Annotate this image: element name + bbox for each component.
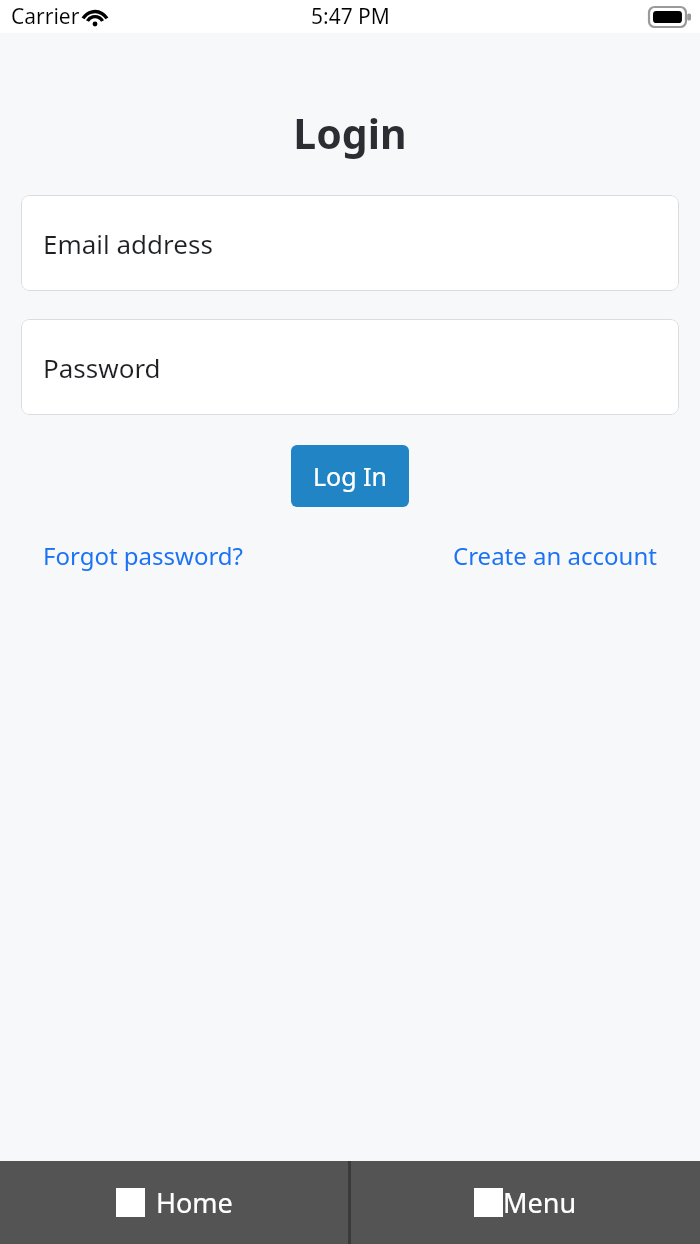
staticText: 5:47 PM	[311, 2, 390, 31]
staticText: Carrier	[11, 2, 80, 31]
staticText: Home	[156, 1184, 233, 1221]
button[interactable]: Email address	[21, 195, 679, 291]
staticText: Password	[43, 350, 161, 385]
staticText: Menu	[503, 1184, 577, 1221]
button[interactable]: Create an account	[453, 539, 657, 572]
button[interactable]: Menu	[351, 1161, 700, 1244]
staticText: Create an account	[453, 539, 657, 572]
staticText: Login	[0, 105, 700, 161]
button[interactable]: Password	[21, 319, 679, 415]
staticText: Email address	[43, 226, 213, 261]
button[interactable]: Log In	[291, 445, 409, 507]
staticText: Forgot password?	[43, 539, 244, 572]
button[interactable]: Forgot password?	[43, 539, 244, 572]
staticText: Log In	[313, 459, 388, 493]
button[interactable]: Home	[0, 1161, 348, 1244]
